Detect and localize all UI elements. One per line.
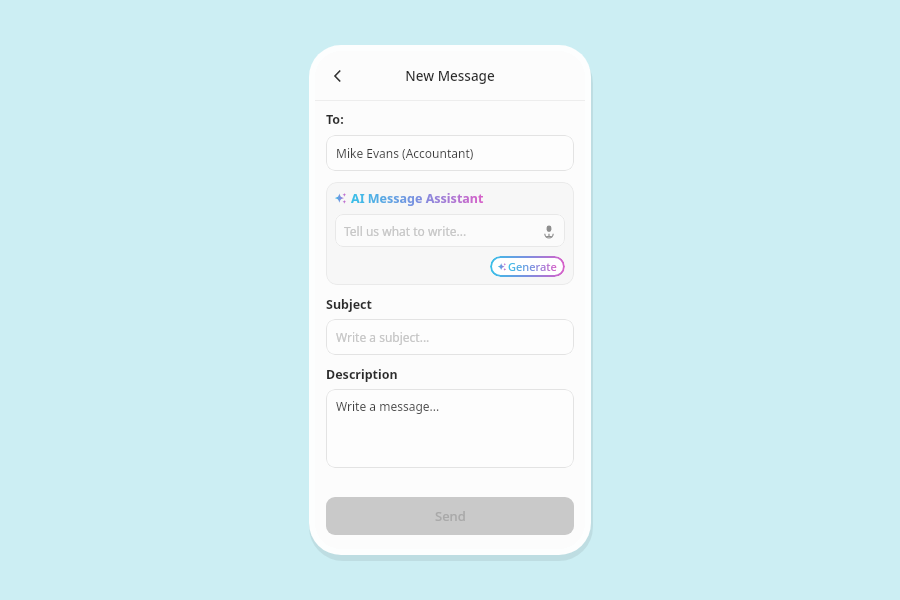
staticText: Tell us what to write... xyxy=(344,223,540,239)
staticText: Description xyxy=(326,366,398,383)
button[interactable]: Mike Evans (Accountant) xyxy=(326,135,574,171)
staticText: Send xyxy=(435,507,466,525)
button[interactable]: Tell us what to write... xyxy=(335,214,565,247)
staticText: Mike Evans (Accountant) xyxy=(336,145,474,161)
staticText: AI Message Assistant xyxy=(351,190,484,207)
button[interactable]: Write a subject... xyxy=(326,319,574,355)
staticText: To: xyxy=(326,111,344,128)
button[interactable]: Write a message... xyxy=(326,389,574,468)
button[interactable]: Generate xyxy=(490,256,565,277)
staticText: Subject xyxy=(326,296,372,313)
staticText: New Message xyxy=(405,67,495,85)
button[interactable]: Send xyxy=(326,497,574,535)
button[interactable]: Back xyxy=(321,59,355,93)
staticText: Generate xyxy=(508,259,557,274)
button[interactable]: Voice input xyxy=(540,222,558,240)
staticText: Write a message... xyxy=(336,398,440,414)
staticText: Write a subject... xyxy=(336,329,430,345)
